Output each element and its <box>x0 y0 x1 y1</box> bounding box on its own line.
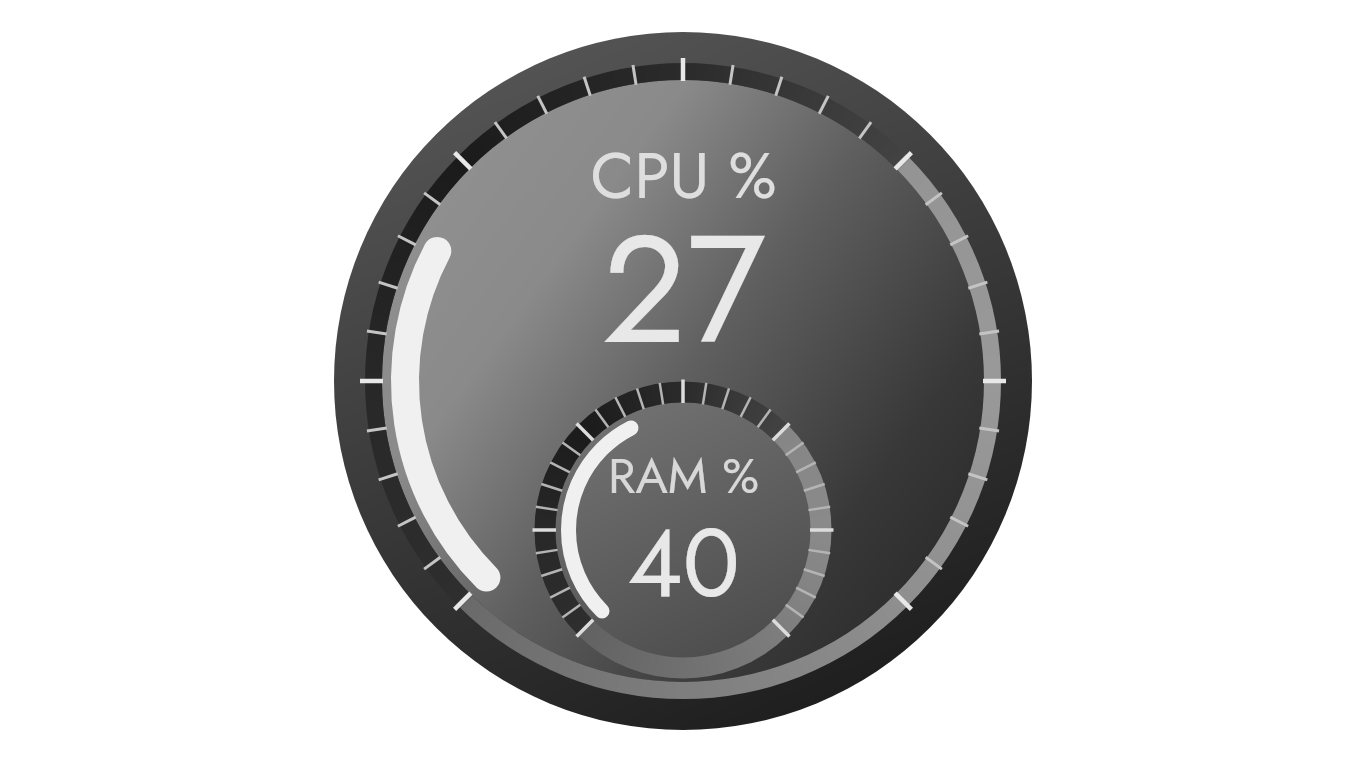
staticText: CPU % <box>590 130 777 222</box>
staticText: 27 <box>601 181 766 398</box>
staticText: RAM % <box>608 441 759 512</box>
staticText: 40 <box>627 494 740 631</box>
